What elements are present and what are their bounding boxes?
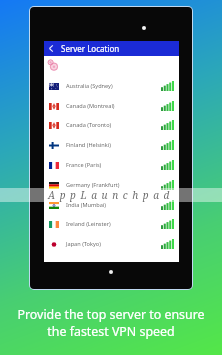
button[interactable]: India (Mumbai) — [44, 195, 179, 215]
button[interactable]: Finland (Helsinki) — [44, 135, 179, 155]
button[interactable]: France (Paris) — [44, 155, 179, 175]
staticText: Ireland (Leinster) — [66, 220, 111, 228]
staticText: the fastest VPN speed — [47, 323, 175, 340]
staticText: Japan (Tokyo) — [66, 240, 101, 248]
staticText: Finland (Helsinki) — [66, 141, 111, 149]
staticText: Canada (Toronto) — [66, 121, 112, 129]
button[interactable]: Australia (Sydney) — [44, 76, 179, 96]
staticText: France (Paris) — [66, 161, 102, 169]
staticText: Germany (Frankfurt) — [66, 181, 120, 189]
button[interactable]: Germany (Frankfurt) — [44, 175, 179, 195]
button[interactable]: Canada (Montreal) — [44, 96, 179, 116]
button[interactable]: Fastest server — [44, 56, 179, 75]
staticText: Provide the top server to ensure — [17, 306, 205, 323]
button[interactable]: Back — [44, 41, 179, 56]
other: Fastest server — [47, 59, 59, 71]
button[interactable]: Ireland (Leinster) — [44, 214, 179, 234]
button[interactable]: Japan (Tokyo) — [44, 234, 179, 254]
staticText: AppLaunchpad — [48, 188, 174, 202]
button[interactable]: Canada (Toronto) — [44, 115, 179, 135]
staticText: Server Location — [61, 43, 120, 54]
staticText: Australia (Sydney) — [66, 82, 113, 90]
staticText: India (Mumbai) — [66, 201, 106, 209]
staticText: Canada (Montreal) — [66, 102, 115, 110]
button[interactable]: Back — [44, 41, 61, 56]
